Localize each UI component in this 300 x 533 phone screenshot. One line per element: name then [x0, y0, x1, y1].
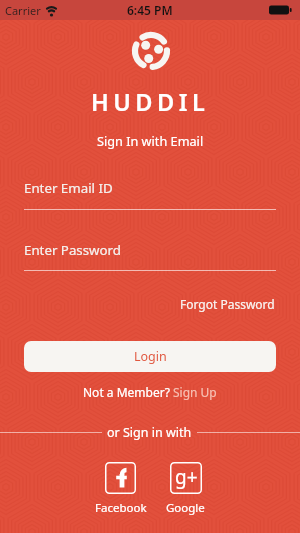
staticText: Sign In with Email [97, 132, 204, 149]
staticText: HUDDIL [91, 86, 210, 118]
staticText: or Sign in with [107, 424, 192, 440]
staticText: Login [134, 348, 167, 365]
button[interactable]: Enter Password [24, 241, 276, 271]
staticText: Enter Password [24, 241, 122, 259]
staticText: g+ [175, 464, 198, 490]
button[interactable]: Forgot Password [180, 296, 275, 312]
button[interactable]: Facebook [90, 462, 151, 516]
staticText: Not a Member? [83, 384, 173, 400]
button[interactable]: g+ [155, 462, 216, 516]
staticText: Google [166, 500, 205, 516]
staticText: Facebook [95, 500, 147, 516]
button[interactable]: Login [24, 341, 276, 372]
staticText: Enter Email ID [24, 179, 113, 197]
button[interactable]: Enter Email ID [24, 179, 276, 210]
staticText: Carrier [5, 3, 41, 18]
staticText: 6:45 PM [127, 2, 173, 18]
button[interactable]: Sign Up [173, 384, 217, 400]
